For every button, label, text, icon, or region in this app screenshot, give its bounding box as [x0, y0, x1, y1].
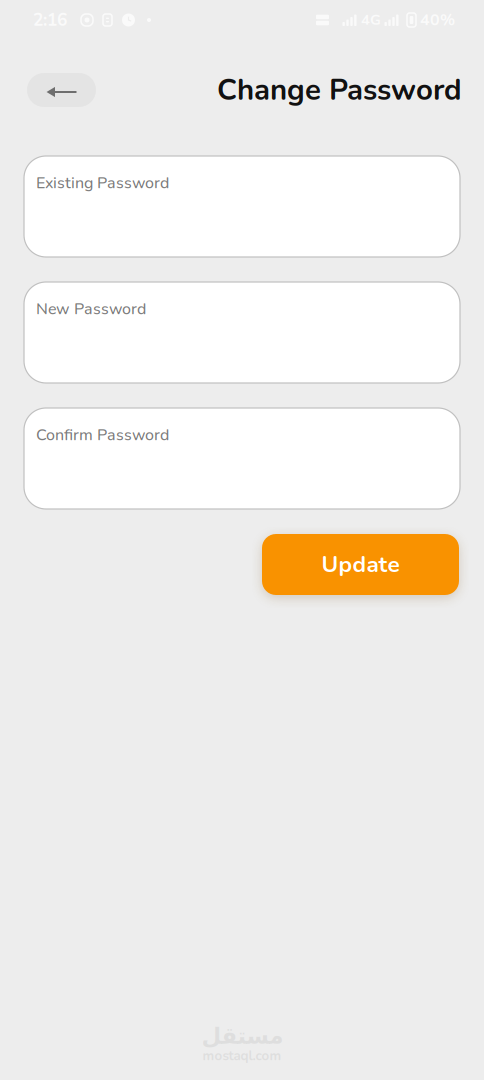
staticText: 2:16 — [33, 8, 67, 32]
staticText: 40% — [420, 9, 455, 31]
button[interactable]: Confirm Password — [24, 408, 460, 509]
staticText: Change Password — [217, 70, 462, 110]
staticText: mostaql.com — [202, 1047, 281, 1065]
staticText: Update — [321, 549, 399, 580]
staticText: مستقل — [201, 1023, 283, 1049]
staticText: New Password — [36, 298, 146, 320]
button[interactable]: Back — [27, 73, 96, 107]
button[interactable]: Update — [262, 534, 459, 595]
staticText: Existing Password — [36, 172, 169, 194]
staticText: Confirm Password — [36, 424, 169, 446]
button[interactable]: Existing Password — [24, 156, 460, 257]
button[interactable]: New Password — [24, 282, 460, 383]
staticText: 4G — [361, 10, 381, 30]
